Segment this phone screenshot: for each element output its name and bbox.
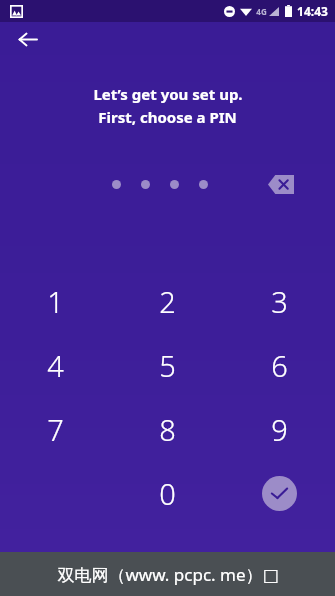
staticText: 5 — [159, 346, 176, 385]
button[interactable]: Confirm — [224, 461, 335, 525]
button[interactable]: Back — [10, 22, 44, 56]
button[interactable]: 1 — [0, 269, 111, 333]
staticText: 6 — [271, 346, 288, 385]
staticText: 双电网（www. pcpc. me）□ — [57, 563, 279, 586]
staticText: 8 — [159, 410, 176, 449]
staticText: 4G — [256, 6, 267, 17]
button[interactable]: 4 — [0, 333, 111, 397]
button[interactable]: 7 — [0, 397, 111, 461]
staticText: 3 — [271, 282, 288, 321]
staticText: 4 — [47, 346, 64, 385]
button[interactable]: 0 — [111, 461, 224, 525]
staticText: 1 — [47, 282, 64, 321]
button[interactable]: 6 — [224, 333, 335, 397]
staticText: 9 — [271, 410, 288, 449]
button[interactable]: 3 — [224, 269, 335, 333]
button[interactable]: 9 — [224, 397, 335, 461]
staticText: 14:43 — [297, 3, 328, 19]
staticText: Let’s get you set up. — [93, 84, 243, 104]
staticText: 2 — [159, 282, 176, 321]
button[interactable]: 8 — [111, 397, 224, 461]
staticText: 7 — [47, 410, 64, 449]
staticText: 0 — [159, 474, 176, 513]
button[interactable]: 2 — [111, 269, 224, 333]
button[interactable]: Delete — [264, 171, 298, 197]
staticText: First, choose a PIN — [98, 107, 237, 127]
button[interactable]: 5 — [111, 333, 224, 397]
